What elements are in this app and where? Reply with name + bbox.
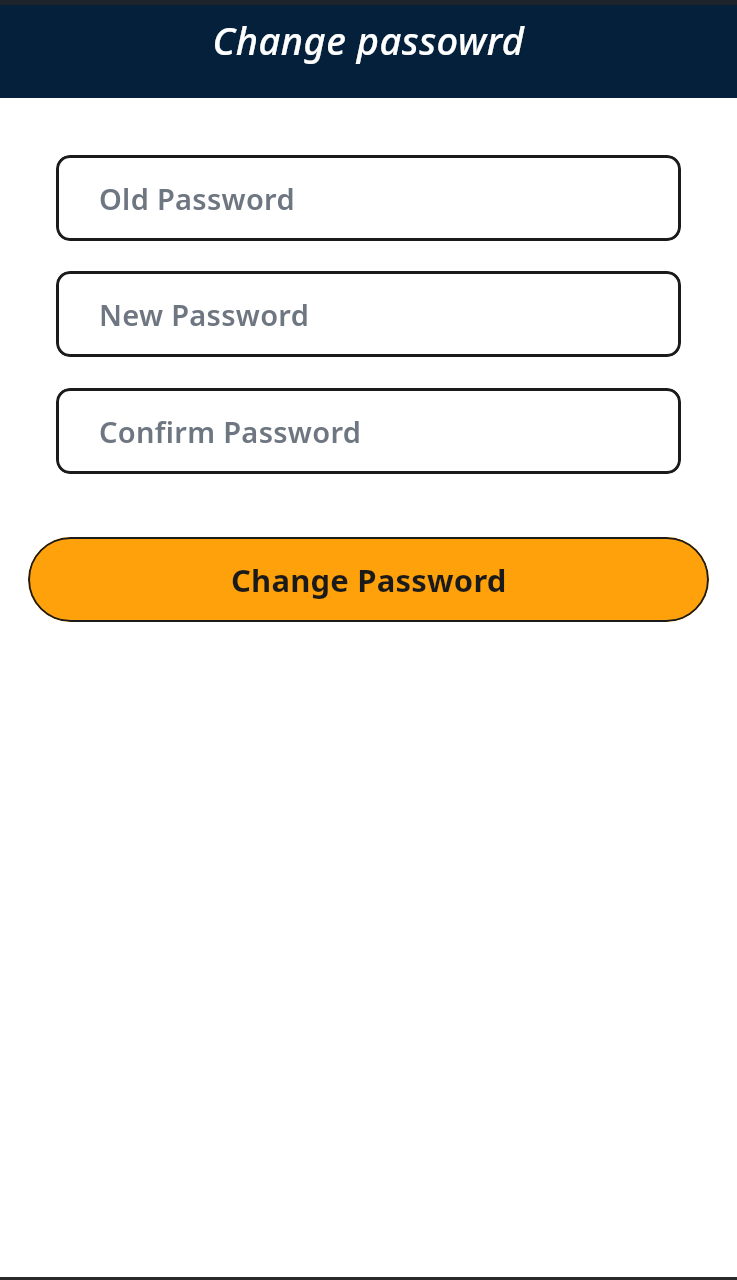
staticText: Change Password <box>231 559 507 601</box>
button[interactable]: New Password <box>56 271 681 357</box>
staticText: Confirm Password <box>99 412 362 451</box>
staticText: Old Password <box>99 179 295 218</box>
button[interactable]: Old Password <box>56 155 681 241</box>
staticText: Change passowrd <box>0 14 737 66</box>
button[interactable]: Confirm Password <box>56 388 681 474</box>
staticText: New Password <box>99 295 310 334</box>
button[interactable]: Change Password <box>28 537 709 622</box>
